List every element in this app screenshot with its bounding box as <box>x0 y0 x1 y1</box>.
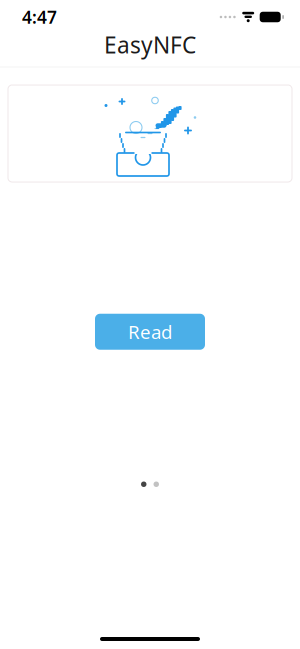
button[interactable]: Read <box>95 314 205 350</box>
staticText: Read <box>128 319 172 344</box>
staticText: 4:47 <box>22 5 57 28</box>
staticText: EasyNFC <box>104 29 196 60</box>
